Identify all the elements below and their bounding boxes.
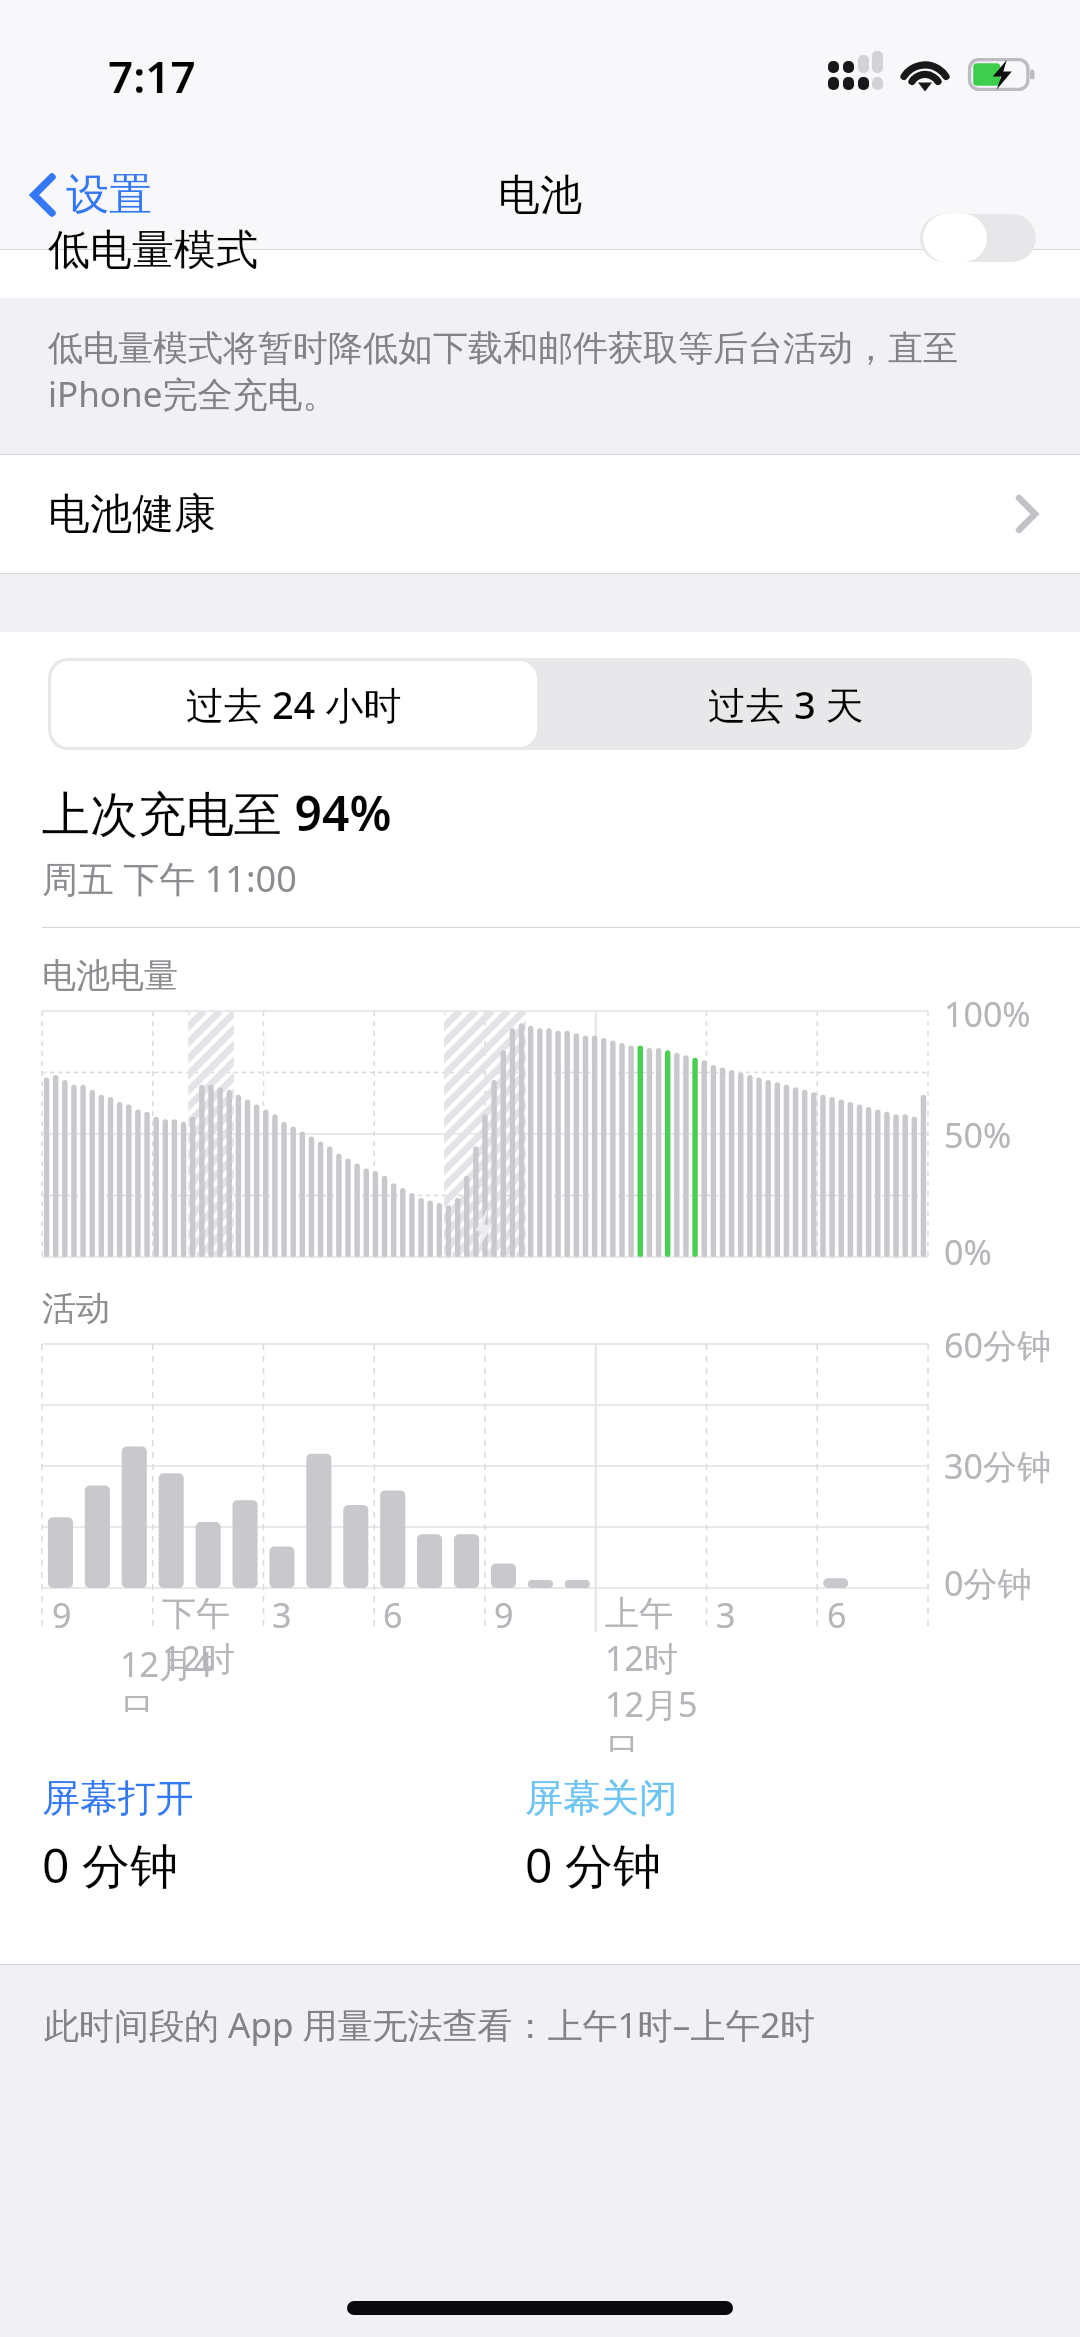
staticText: 活动 — [42, 1287, 110, 1330]
staticText: 30分钟 — [944, 1443, 1051, 1489]
staticText: 0分钟 — [944, 1560, 1032, 1606]
staticText: 上次充电至 94% — [42, 780, 392, 846]
staticText: 过去 3 天 — [708, 678, 864, 730]
staticText: 6 — [383, 1592, 403, 1638]
staticText: 60分钟 — [944, 1322, 1051, 1368]
staticText: 0 分钟 — [525, 1832, 661, 1898]
staticText: 12时 — [162, 1635, 235, 1681]
button[interactable]: 低电量模式开关 — [920, 214, 1036, 262]
button[interactable]: 电池健康 — [0, 455, 1080, 573]
staticText: 电池健康 — [48, 488, 216, 541]
staticText: 电池电量 — [42, 954, 178, 997]
staticText: 12时 — [605, 1635, 678, 1681]
staticText: 12月5日 — [605, 1681, 706, 1752]
staticText: 9 — [52, 1592, 72, 1638]
staticText: 9 — [494, 1592, 514, 1638]
staticText: 屏幕关闭 — [525, 1774, 677, 1822]
staticText: 100% — [944, 991, 1031, 1037]
staticText: 电池 — [498, 169, 582, 222]
staticText: 此时间段的 App 用量无法查看：上午1时–上午2时 — [44, 2001, 816, 2049]
staticText: 周五 下午 11:00 — [42, 854, 297, 903]
staticText: 过去 24 小时 — [186, 678, 402, 730]
staticText: 0% — [944, 1229, 992, 1275]
staticText: 下午 — [162, 1592, 230, 1635]
staticText: iPhone完全充电。 — [48, 370, 338, 418]
staticText: 12月4日 — [120, 1641, 220, 1712]
staticText: 上午 — [605, 1592, 673, 1635]
staticText: 0 分钟 — [42, 1832, 178, 1898]
button[interactable]: 设置 — [22, 158, 160, 232]
staticText: 3 — [716, 1592, 736, 1638]
staticText: 设置 — [66, 168, 152, 222]
staticText: 7:17 — [108, 46, 196, 106]
staticText: 低电量模式将暂时降低如下载和邮件获取等后台活动，直至 — [48, 326, 958, 370]
staticText: 6 — [827, 1592, 847, 1638]
button[interactable]: 过去 3 天 — [540, 658, 1032, 750]
staticText: 屏幕打开 — [42, 1774, 194, 1822]
staticText: 低电量模式 — [48, 224, 258, 272]
button[interactable]: 过去 24 小时 — [51, 661, 537, 747]
staticText: 50% — [944, 1112, 1012, 1158]
staticText: 3 — [272, 1592, 292, 1638]
